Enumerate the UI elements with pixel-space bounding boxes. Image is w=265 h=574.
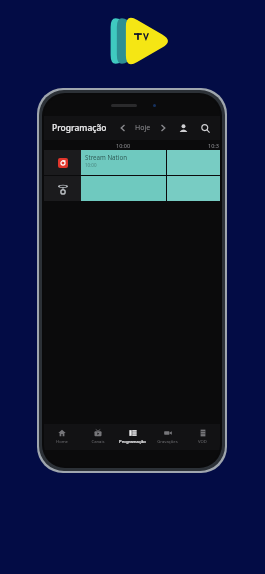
button[interactable]: Canal xyxy=(44,176,81,201)
staticText: Home xyxy=(56,439,68,445)
staticText: Programação xyxy=(52,122,107,134)
staticText: 10:00 xyxy=(116,142,131,149)
staticText: Programação xyxy=(119,439,146,445)
staticText: Canais xyxy=(91,439,105,445)
button[interactable]: Canal Stream Nation xyxy=(44,150,81,175)
staticText: 10:00 xyxy=(85,162,97,168)
staticText: Hoje xyxy=(135,123,151,133)
staticText: Stream Nation xyxy=(85,153,127,161)
button[interactable]: Canais xyxy=(80,424,115,450)
staticText: VOD xyxy=(198,439,207,445)
staticText: 10:3 xyxy=(208,142,219,149)
button[interactable]: Pesquisar xyxy=(197,120,213,136)
button[interactable]: Gravações xyxy=(150,424,185,450)
button[interactable] xyxy=(81,176,220,201)
staticText: Gravações xyxy=(157,439,178,445)
button[interactable]: VOD xyxy=(185,424,220,450)
button[interactable]: Home xyxy=(44,424,80,450)
button[interactable]: Programação xyxy=(115,424,150,450)
button[interactable]: Próximo dia xyxy=(157,122,169,134)
button[interactable]: Hoje xyxy=(133,123,153,133)
button[interactable]: Perfil xyxy=(175,120,191,136)
button[interactable]: Stream Nation xyxy=(81,150,220,175)
button[interactable]: Dia anterior xyxy=(117,122,129,134)
